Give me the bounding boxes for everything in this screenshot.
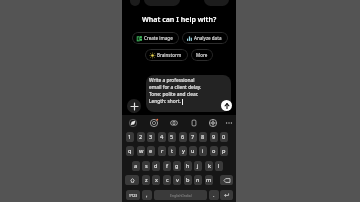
button[interactable]: Backspace (220, 175, 233, 185)
button[interactable]: 7 (189, 132, 197, 142)
staticText: 8 (201, 133, 205, 141)
button[interactable]: b (184, 175, 192, 185)
staticText: 5 (170, 133, 174, 141)
staticText: 9 (212, 133, 216, 141)
staticText: c (166, 176, 169, 184)
staticText: a (134, 162, 138, 170)
button[interactable]: Write a professional (146, 75, 231, 112)
button[interactable]: m (205, 175, 213, 185)
staticText: Write a professional (149, 77, 195, 84)
staticText: 6 (181, 133, 185, 141)
button[interactable]: c (163, 175, 171, 185)
button[interactable]: Create image (132, 32, 179, 44)
staticText: 2 (139, 133, 143, 141)
staticText: 7 (191, 133, 195, 141)
staticText: z (145, 176, 148, 184)
button[interactable]: Clipboard (188, 117, 199, 128)
button[interactable]: v (173, 175, 181, 185)
button[interactable]: 9 (210, 132, 218, 142)
button[interactable]: Shift (125, 175, 139, 185)
staticText: p (222, 147, 226, 155)
button[interactable]: l (215, 161, 223, 171)
button[interactable]: y (179, 146, 187, 156)
button[interactable]: g (173, 161, 181, 171)
button[interactable]: n (194, 175, 202, 185)
staticText: f (166, 162, 168, 170)
button[interactable]: 4 (158, 132, 166, 142)
staticText: b (186, 176, 190, 184)
button[interactable]: h (184, 161, 192, 171)
staticText: 1 (128, 133, 132, 141)
button[interactable]: r (158, 146, 166, 156)
staticText: h (186, 162, 190, 170)
button[interactable]: p (220, 146, 228, 156)
staticText: g (175, 162, 179, 170)
button[interactable]: s (142, 161, 150, 171)
button[interactable]: Enter (220, 190, 233, 200)
button[interactable]: 2 (137, 132, 145, 142)
staticText: Length: short. (149, 98, 181, 105)
staticText: !?123 (129, 193, 138, 198)
staticText: e (149, 147, 153, 155)
staticText: y (182, 147, 185, 155)
button[interactable]: Stickers (127, 117, 138, 128)
staticText: 4 (160, 133, 164, 141)
button[interactable]: More (191, 49, 213, 61)
button[interactable]: t (168, 146, 176, 156)
button[interactable]: j (194, 161, 202, 171)
staticText: u (191, 147, 195, 155)
button[interactable]: Settings (207, 117, 218, 128)
staticText: Tone: polite and clear. (149, 91, 199, 98)
button[interactable]: More (223, 117, 234, 128)
staticText: r (161, 147, 164, 155)
staticText: j (197, 162, 199, 170)
staticText: email for a client delay. (149, 84, 202, 91)
staticText: More (196, 52, 208, 58)
button[interactable]: i (199, 146, 207, 156)
button[interactable]: o (210, 146, 218, 156)
button[interactable]: Analyze data (182, 32, 228, 44)
staticText: Analyze data (194, 35, 222, 41)
button[interactable]: z (142, 175, 150, 185)
staticText: , (146, 191, 148, 199)
button[interactable]: , (142, 190, 152, 200)
staticText: w (139, 147, 144, 155)
button[interactable]: Emoji (168, 117, 179, 128)
button[interactable]: a (132, 161, 140, 171)
button[interactable]: Add attachment (127, 99, 141, 113)
button[interactable]: English(India) (154, 190, 207, 200)
staticText: What can I help with? (142, 14, 217, 24)
button[interactable]: 0 (220, 132, 228, 142)
staticText: d (154, 162, 158, 170)
button[interactable]: Brainstorm (145, 49, 188, 61)
staticText: Create image (144, 35, 173, 41)
button[interactable]: 5 (168, 132, 176, 142)
staticText: . (213, 191, 215, 199)
button[interactable]: k (205, 161, 213, 171)
staticText: k (208, 162, 211, 170)
button[interactable]: Send (221, 100, 232, 111)
button[interactable]: u (189, 146, 197, 156)
staticText: t (171, 147, 174, 155)
staticText: q (128, 147, 132, 155)
button[interactable]: e (147, 146, 155, 156)
button[interactable]: GIF (148, 117, 159, 128)
button[interactable]: 3 (147, 132, 155, 142)
staticText: n (196, 176, 200, 184)
button[interactable]: 8 (199, 132, 207, 142)
staticText: l (218, 162, 220, 170)
button[interactable]: 1 (126, 132, 134, 142)
button[interactable]: w (137, 146, 145, 156)
staticText: v (176, 176, 179, 184)
button[interactable]: 6 (179, 132, 187, 142)
button[interactable]: q (126, 146, 134, 156)
button[interactable]: !?123 (126, 190, 140, 200)
staticText: s (145, 162, 148, 170)
button[interactable]: f (163, 161, 171, 171)
button[interactable]: x (152, 175, 160, 185)
staticText: Brainstorm (157, 52, 182, 58)
staticText: 0 (222, 133, 226, 141)
button[interactable]: d (152, 161, 160, 171)
button[interactable]: . (209, 190, 219, 200)
staticText: English(India) (170, 193, 192, 198)
